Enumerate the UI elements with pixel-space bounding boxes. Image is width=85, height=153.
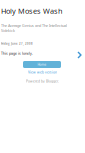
button[interactable]: View web version bbox=[0, 70, 85, 74]
staticText: Holy Moses Wash bbox=[1, 6, 63, 16]
button[interactable]: Home bbox=[23, 61, 61, 68]
staticText: This page is lonely. bbox=[1, 51, 33, 56]
staticText: The Average Genius and The Intellectual … bbox=[1, 23, 67, 33]
staticText: Powered by Blogger. bbox=[26, 79, 59, 83]
staticText: Home bbox=[37, 62, 46, 67]
staticText: View web version bbox=[28, 70, 57, 74]
staticText: Friday, June 27, 2008 bbox=[1, 42, 33, 46]
button[interactable]: Open post bbox=[77, 51, 82, 59]
